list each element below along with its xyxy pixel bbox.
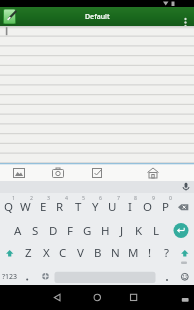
staticText: 3	[47, 194, 50, 201]
button[interactable]	[48, 163, 96, 181]
staticText: 1	[12, 194, 15, 201]
staticText: T	[75, 199, 82, 215]
staticText: 6	[99, 194, 102, 201]
staticText: H	[101, 223, 110, 239]
staticText: 8	[134, 194, 137, 201]
staticText: 0	[169, 194, 172, 201]
staticText: 7	[117, 194, 120, 201]
button[interactable]	[64, 285, 129, 310]
staticText: Q	[4, 199, 13, 215]
staticText: P	[162, 199, 169, 215]
staticText: Z	[25, 245, 32, 261]
staticText: K	[135, 223, 143, 239]
staticText: J	[120, 223, 124, 239]
button[interactable]	[0, 193, 194, 216]
button[interactable]: Default	[0, 7, 194, 26]
button[interactable]	[0, 216, 194, 239]
staticText: 4	[65, 194, 68, 201]
staticText: W	[20, 199, 31, 215]
staticText: F	[67, 223, 73, 239]
staticText: 5	[82, 194, 85, 201]
button[interactable]	[0, 239, 194, 262]
button[interactable]	[0, 163, 48, 181]
staticText: L	[153, 223, 160, 239]
staticText: Default	[85, 12, 110, 22]
staticText: !	[148, 245, 152, 261]
staticText: U	[108, 199, 117, 215]
staticText: ?123	[2, 272, 18, 282]
staticText: ?	[164, 245, 169, 261]
button[interactable]	[0, 285, 64, 310]
button[interactable]	[0, 181, 194, 193]
button[interactable]	[129, 285, 194, 310]
staticText: B	[94, 245, 102, 261]
staticText: X	[43, 245, 50, 261]
staticText: D	[49, 223, 58, 239]
button[interactable]	[0, 26, 194, 163]
button[interactable]	[0, 262, 194, 285]
staticText: Y	[92, 199, 99, 215]
staticText: O	[143, 199, 152, 215]
staticText: A	[14, 223, 22, 239]
staticText: E	[40, 199, 47, 215]
button[interactable]	[145, 163, 194, 181]
staticText: S	[32, 223, 39, 239]
staticText: C	[59, 245, 67, 261]
staticText: R	[56, 199, 64, 215]
staticText: G	[83, 223, 92, 239]
staticText: M	[128, 245, 139, 261]
staticText: I	[128, 199, 132, 215]
staticText: V	[77, 245, 84, 261]
staticText: 2	[30, 194, 33, 201]
staticText: N	[111, 245, 120, 261]
button[interactable]	[96, 163, 145, 181]
staticText: 9	[152, 194, 155, 201]
